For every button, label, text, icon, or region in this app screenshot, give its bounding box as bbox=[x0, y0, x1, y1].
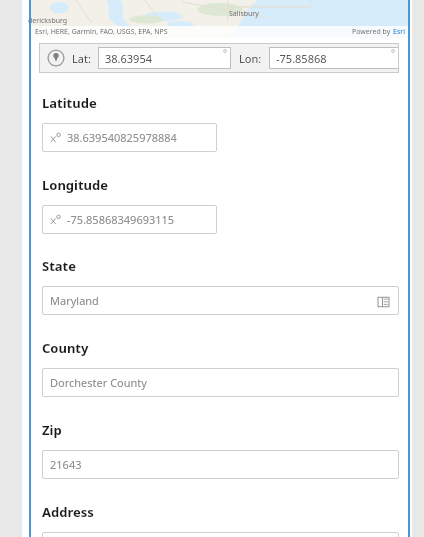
staticText: 21643 bbox=[50, 457, 82, 472]
staticText: Salisbury bbox=[229, 9, 259, 19]
staticText: Dorchester County bbox=[50, 375, 147, 390]
button[interactable]: -75.85868 bbox=[269, 47, 399, 69]
staticText: Zip bbox=[42, 421, 62, 439]
staticText: County bbox=[42, 339, 89, 357]
staticText: Address bbox=[42, 503, 94, 521]
staticText: Lat: bbox=[72, 51, 91, 66]
button[interactable]: 21643 bbox=[42, 450, 399, 479]
staticText: Lon: bbox=[239, 51, 262, 66]
button[interactable]: Choose from list bbox=[372, 290, 394, 312]
staticText: Latitude bbox=[42, 94, 97, 112]
button[interactable]: 21643, Hurlock, MD, USA bbox=[42, 532, 399, 537]
staticText: Esri, HERE, Garmin, FAO, USGS, EPA, NPS bbox=[35, 27, 168, 37]
staticText: Maryland bbox=[50, 293, 99, 308]
staticText: Longitude bbox=[42, 176, 109, 194]
button[interactable]: Maryland bbox=[42, 286, 399, 315]
button[interactable]: -75.85868349693115 bbox=[42, 205, 217, 234]
button[interactable]: 38.639540825978884 bbox=[42, 123, 217, 152]
staticText: Powered by bbox=[352, 27, 393, 37]
button[interactable]: 38.63954 bbox=[98, 47, 231, 69]
button[interactable]: Esri bbox=[393, 27, 405, 37]
staticText: -75.85868349693115 bbox=[67, 212, 175, 227]
staticText: State bbox=[42, 257, 76, 275]
button[interactable]: Dorchester County bbox=[42, 368, 399, 397]
button[interactable]: Locate point bbox=[46, 48, 66, 68]
staticText: dericksburg bbox=[28, 16, 68, 26]
staticText: -75.85868 bbox=[276, 51, 327, 66]
staticText: 38.639540825978884 bbox=[67, 130, 177, 145]
staticText: 38.63954 bbox=[105, 51, 152, 66]
